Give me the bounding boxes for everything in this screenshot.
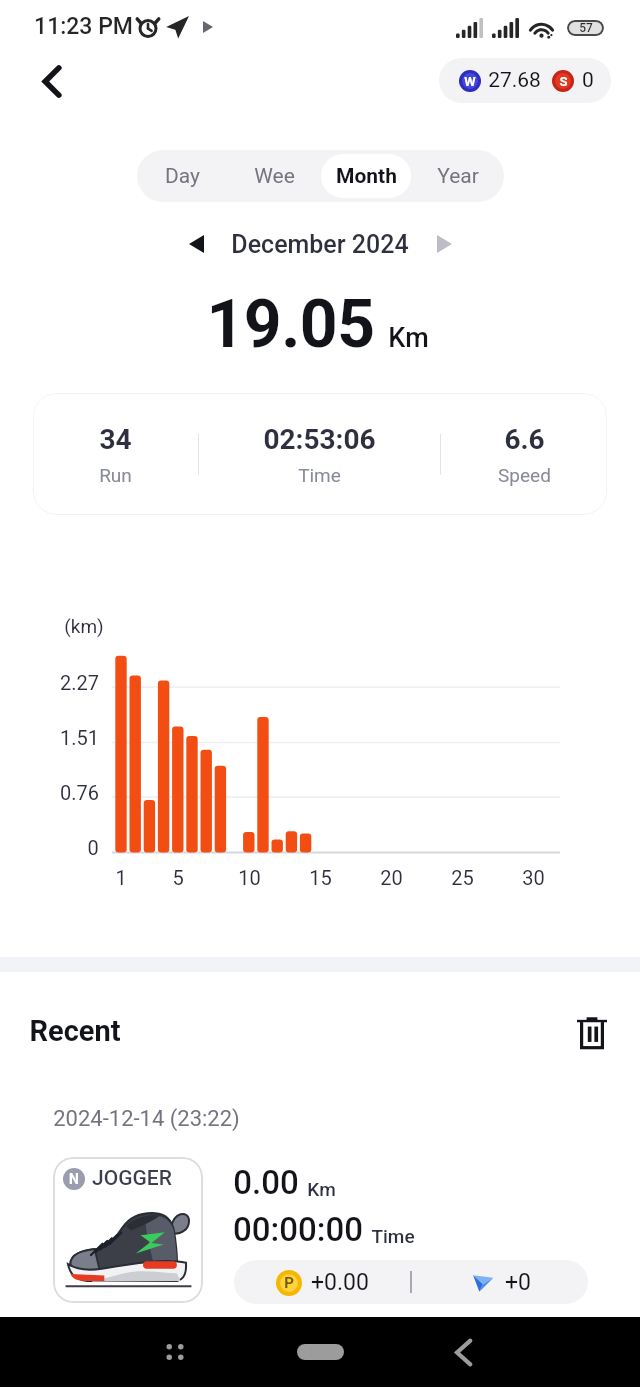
button[interactable]: 2024-12-14 (23:22): [26, 1092, 614, 1316]
button[interactable]: Back: [26, 55, 78, 107]
button[interactable]: Recent apps: [151, 1328, 199, 1376]
staticText: 2.27: [60, 671, 99, 694]
staticText: Km: [307, 1178, 336, 1200]
staticText: Speed: [498, 464, 551, 486]
staticText: Time: [298, 464, 341, 486]
staticText: Km: [388, 322, 429, 354]
staticText: 10: [238, 866, 261, 889]
staticText: 15: [309, 866, 332, 889]
staticText: 5: [172, 866, 184, 889]
staticText: 34: [99, 423, 132, 456]
staticText: 19.05: [206, 286, 375, 363]
staticText: 0: [87, 836, 99, 859]
staticText: 0: [582, 68, 594, 93]
staticText: 27.68: [488, 68, 541, 93]
staticText: Run: [99, 464, 132, 486]
staticText: Month: [336, 164, 397, 189]
staticText: December 2024: [231, 230, 409, 259]
button[interactable]: Home: [297, 1344, 344, 1360]
staticText: P: [284, 1274, 294, 1292]
staticText: 25: [451, 866, 474, 889]
staticText: Wee: [254, 164, 295, 189]
button[interactable]: Wee: [229, 154, 319, 198]
staticText: 02:53:06: [263, 423, 376, 456]
staticText: 00:00:00: [233, 1210, 363, 1249]
staticText: +0.00: [311, 1269, 369, 1296]
staticText: JOGGER: [92, 1166, 172, 1191]
button[interactable]: W: [439, 58, 611, 103]
staticText: 20: [380, 866, 403, 889]
button[interactable]: Delete all: [567, 1007, 617, 1057]
staticText: Day: [165, 164, 200, 189]
staticText: 0.00: [233, 1163, 299, 1202]
staticText: 1.51: [60, 726, 99, 749]
staticText: 11:23 PM: [34, 13, 133, 40]
button[interactable]: Previous month: [178, 226, 214, 262]
staticText: 1: [115, 866, 127, 889]
button[interactable]: Back: [439, 1328, 487, 1376]
staticText: 57: [579, 21, 593, 35]
button[interactable]: Next month: [426, 226, 462, 262]
staticText: S: [559, 74, 568, 89]
staticText: 6.6: [504, 423, 545, 456]
staticText: 30: [522, 866, 545, 889]
staticText: N: [69, 1171, 79, 1187]
staticText: 0.76: [60, 781, 99, 804]
staticText: 2024-12-14 (23:22): [53, 1106, 240, 1132]
staticText: +0: [505, 1269, 531, 1296]
button[interactable]: Year: [413, 154, 503, 198]
staticText: (km): [64, 615, 104, 637]
button[interactable]: Day: [138, 154, 227, 198]
staticText: Year: [437, 164, 479, 189]
staticText: W: [464, 74, 476, 89]
button[interactable]: Month: [321, 154, 411, 198]
staticText: Recent: [29, 1014, 121, 1048]
staticText: Time: [371, 1225, 415, 1247]
